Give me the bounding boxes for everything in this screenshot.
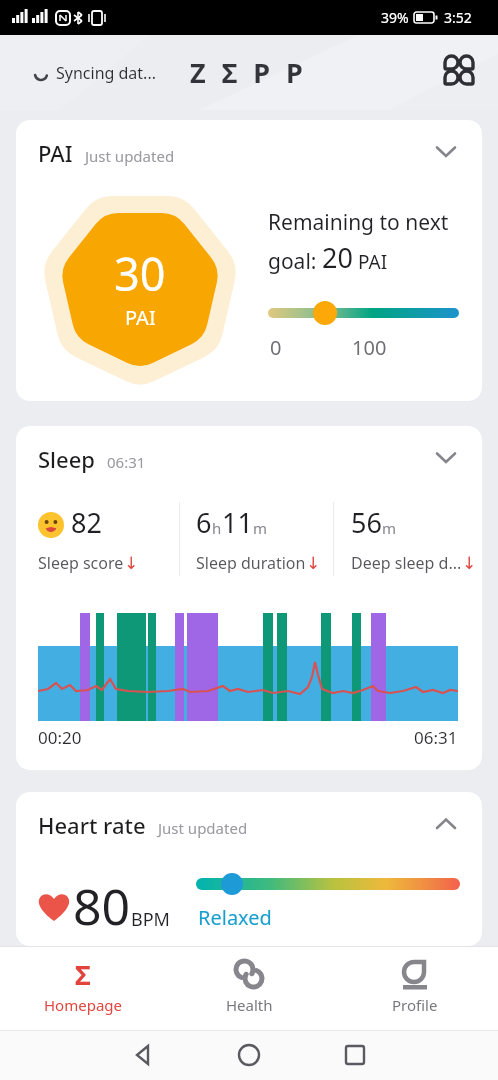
staticText: 11 [222, 504, 253, 541]
staticText: Health [226, 995, 273, 1015]
staticText: Just updated [85, 146, 175, 166]
staticText: Profile [392, 995, 438, 1015]
staticText: Deep sleep d... [351, 552, 462, 574]
staticText: m [253, 518, 268, 538]
staticText: BPM [131, 907, 170, 932]
staticText: Remaining to next [268, 208, 449, 237]
button[interactable] [302, 1030, 408, 1080]
staticText: 30 [114, 243, 166, 304]
staticText: PAI [353, 249, 388, 275]
staticText: 06:31 [107, 452, 146, 472]
button[interactable]: Sleep [16, 426, 482, 770]
staticText: PAI [38, 138, 73, 168]
staticText: Z Σ P P [190, 54, 308, 91]
staticText: 3:52 [444, 8, 472, 27]
button[interactable] [196, 1030, 302, 1080]
staticText: Heart rate [38, 810, 146, 840]
staticText: goal: [268, 247, 322, 276]
button[interactable]: Profile [332, 946, 498, 1030]
staticText: 39% [381, 8, 409, 27]
staticText: 82 [71, 504, 102, 541]
staticText: ↓ [124, 553, 139, 573]
button[interactable]: Heart rate [16, 792, 482, 946]
staticText: m [382, 518, 397, 538]
button[interactable]: Health [166, 946, 332, 1030]
staticText: h [212, 518, 222, 538]
button[interactable]: Σ [0, 946, 166, 1030]
staticText: PAI [125, 304, 156, 331]
staticText: 0 [270, 334, 282, 361]
staticText: Relaxed [198, 904, 272, 931]
staticText: Sleep score [38, 552, 124, 574]
staticText: Syncing dat... [56, 62, 156, 84]
staticText: ↓ [306, 553, 321, 573]
staticText: Σ [75, 956, 91, 992]
staticText: 80 [73, 872, 131, 940]
staticText: 6 [196, 504, 212, 541]
staticText: Sleep [38, 444, 95, 474]
staticText: Sleep duration [196, 552, 306, 574]
button[interactable] [443, 54, 475, 86]
staticText: Homepage [44, 995, 123, 1015]
staticText: 100 [352, 334, 387, 361]
staticText: 20 [322, 239, 353, 276]
staticText: 56 [351, 504, 382, 541]
staticText: ↓ [462, 553, 477, 573]
staticText: 06:31 [414, 726, 458, 749]
button[interactable]: PAI [16, 120, 482, 401]
staticText: 00:20 [38, 726, 82, 749]
staticText: Just updated [158, 818, 248, 838]
button[interactable] [90, 1030, 196, 1080]
